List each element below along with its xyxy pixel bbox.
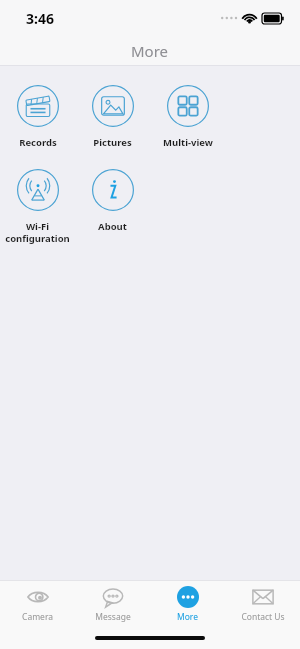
staticText: About — [98, 220, 127, 233]
button[interactable]: Message — [75, 581, 150, 627]
staticText: 3:46 — [26, 9, 54, 28]
button[interactable]: Pictures — [75, 83, 150, 151]
button[interactable]: More — [150, 581, 225, 627]
button[interactable]: Wi-Fi configuration — [0, 167, 75, 247]
staticText: Message — [95, 611, 131, 623]
staticText: More — [131, 41, 169, 61]
staticText: Pictures — [93, 136, 132, 149]
button[interactable]: Records — [0, 83, 75, 151]
button[interactable]: Camera — [0, 581, 75, 627]
staticText: Camera — [22, 611, 53, 623]
button[interactable]: About — [75, 167, 150, 235]
button[interactable]: Contact Us — [225, 581, 300, 627]
staticText: Contact Us — [241, 611, 285, 623]
staticText: More — [177, 611, 198, 623]
staticText: Records — [19, 136, 57, 149]
staticText: Multi-view — [163, 136, 213, 149]
staticText: Wi-Fi configuration — [5, 220, 70, 245]
button[interactable]: Multi-view — [150, 83, 225, 151]
